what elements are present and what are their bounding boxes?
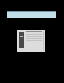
button[interactable]	[17, 30, 45, 52]
button[interactable]: Search	[7, 11, 56, 18]
